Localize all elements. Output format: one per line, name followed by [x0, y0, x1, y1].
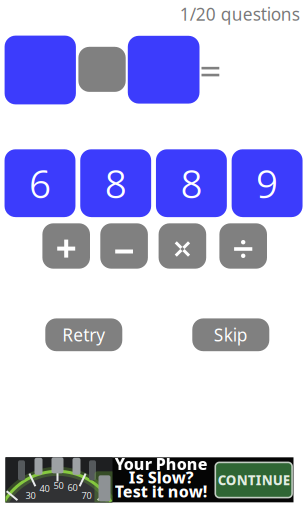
staticText: 1/20 questions [180, 3, 300, 26]
staticText: CONTINUE [218, 471, 290, 489]
button[interactable]: Divide [219, 223, 267, 269]
staticText: Your Phone [115, 453, 208, 475]
button[interactable]: 6 [4, 149, 75, 217]
staticText: 60 [67, 481, 77, 493]
button[interactable]: Plus [42, 223, 90, 269]
staticText: 9 [256, 157, 278, 210]
staticText: 8 [105, 157, 127, 210]
staticText: 40 [39, 482, 49, 494]
staticText: 6 [29, 157, 51, 210]
staticText: 70 [81, 489, 91, 501]
button[interactable]: Minus [100, 223, 148, 269]
button[interactable]: Retry [45, 318, 122, 351]
staticText: Retry [62, 323, 105, 346]
staticText: 50 [53, 479, 63, 491]
staticText: Is Slow? [129, 466, 194, 488]
staticText: 8 [180, 157, 202, 210]
staticText: 30 [25, 489, 35, 501]
button[interactable]: 30 [5, 457, 293, 502]
staticText: Test it now! [115, 480, 208, 502]
button[interactable]: 8 [156, 149, 227, 217]
button[interactable]: 9 [232, 149, 303, 217]
staticText: Skip [214, 323, 248, 346]
button[interactable]: Multiply [159, 223, 206, 269]
button[interactable]: Skip [192, 318, 269, 351]
button[interactable]: 8 [80, 149, 151, 217]
